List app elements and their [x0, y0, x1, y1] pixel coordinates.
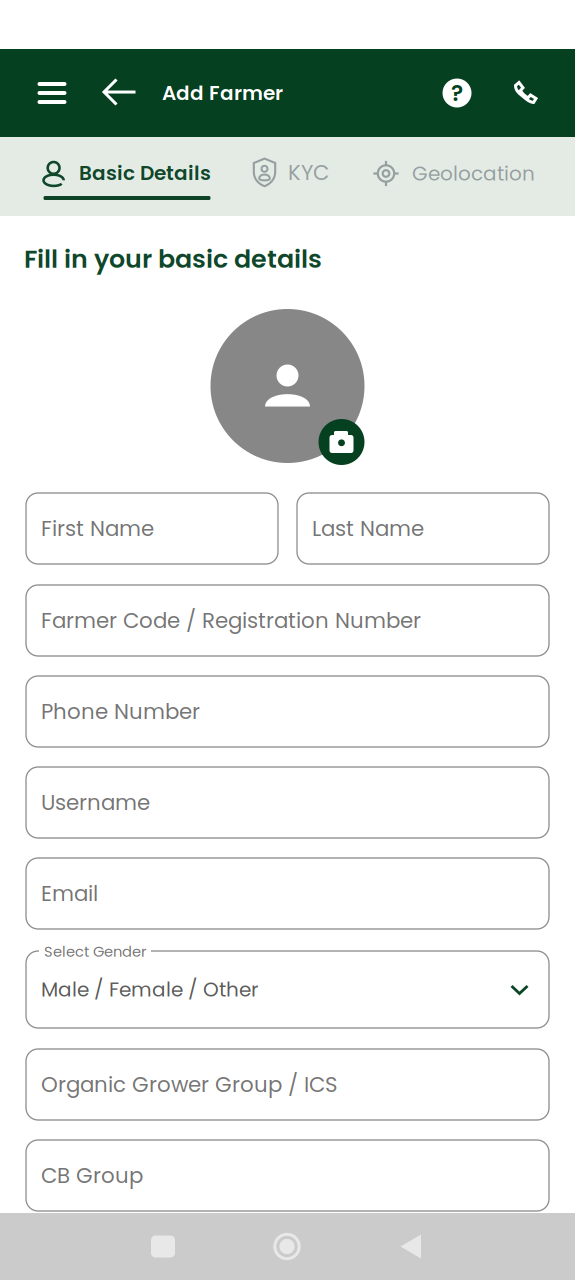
staticText: ? — [451, 77, 463, 109]
button[interactable]: Username — [26, 767, 549, 838]
button[interactable]: Email — [26, 858, 549, 929]
staticText: Add Farmer — [162, 79, 283, 107]
staticText: Organic Grower Group / ICS — [41, 1070, 338, 1099]
staticText: Farmer Code / Registration Number — [41, 606, 421, 635]
button[interactable]: Organic Grower Group / ICS — [26, 1049, 549, 1120]
button[interactable]: Back — [349, 1213, 473, 1280]
button[interactable]: First Name — [26, 493, 278, 564]
staticText: Fill in your basic details — [24, 241, 322, 277]
staticText: Male / Female / Other — [41, 975, 258, 1003]
staticText: First Name — [41, 514, 154, 543]
button[interactable]: Menu — [34, 74, 70, 112]
button[interactable]: Last Name — [297, 493, 549, 564]
staticText: Select Gender — [44, 941, 146, 962]
button[interactable]: Change photo — [318, 419, 364, 465]
button[interactable]: Home — [225, 1213, 349, 1280]
button[interactable]: Back — [102, 76, 137, 110]
button[interactable]: Geolocation — [372, 137, 547, 216]
button[interactable]: CB Group — [26, 1140, 549, 1211]
staticText: KYC — [288, 158, 329, 187]
staticText: Phone Number — [41, 697, 200, 726]
button[interactable]: KYC — [252, 137, 330, 216]
button[interactable]: Basic Details — [42, 137, 212, 216]
staticText: Basic Details — [79, 159, 211, 187]
button[interactable]: Phone Number — [26, 676, 549, 747]
staticText: Email — [41, 879, 98, 908]
button[interactable]: Farmer Code / Registration Number — [26, 585, 549, 656]
button[interactable]: Recent apps — [101, 1213, 225, 1280]
button[interactable]: Male / Female / Other — [26, 943, 549, 1028]
staticText: CB Group — [41, 1161, 143, 1190]
staticText: Username — [41, 788, 150, 817]
button[interactable]: Call support — [512, 79, 539, 107]
button[interactable]: Help — [440, 76, 474, 110]
staticText: Geolocation — [412, 159, 535, 187]
staticText: Last Name — [312, 514, 424, 543]
